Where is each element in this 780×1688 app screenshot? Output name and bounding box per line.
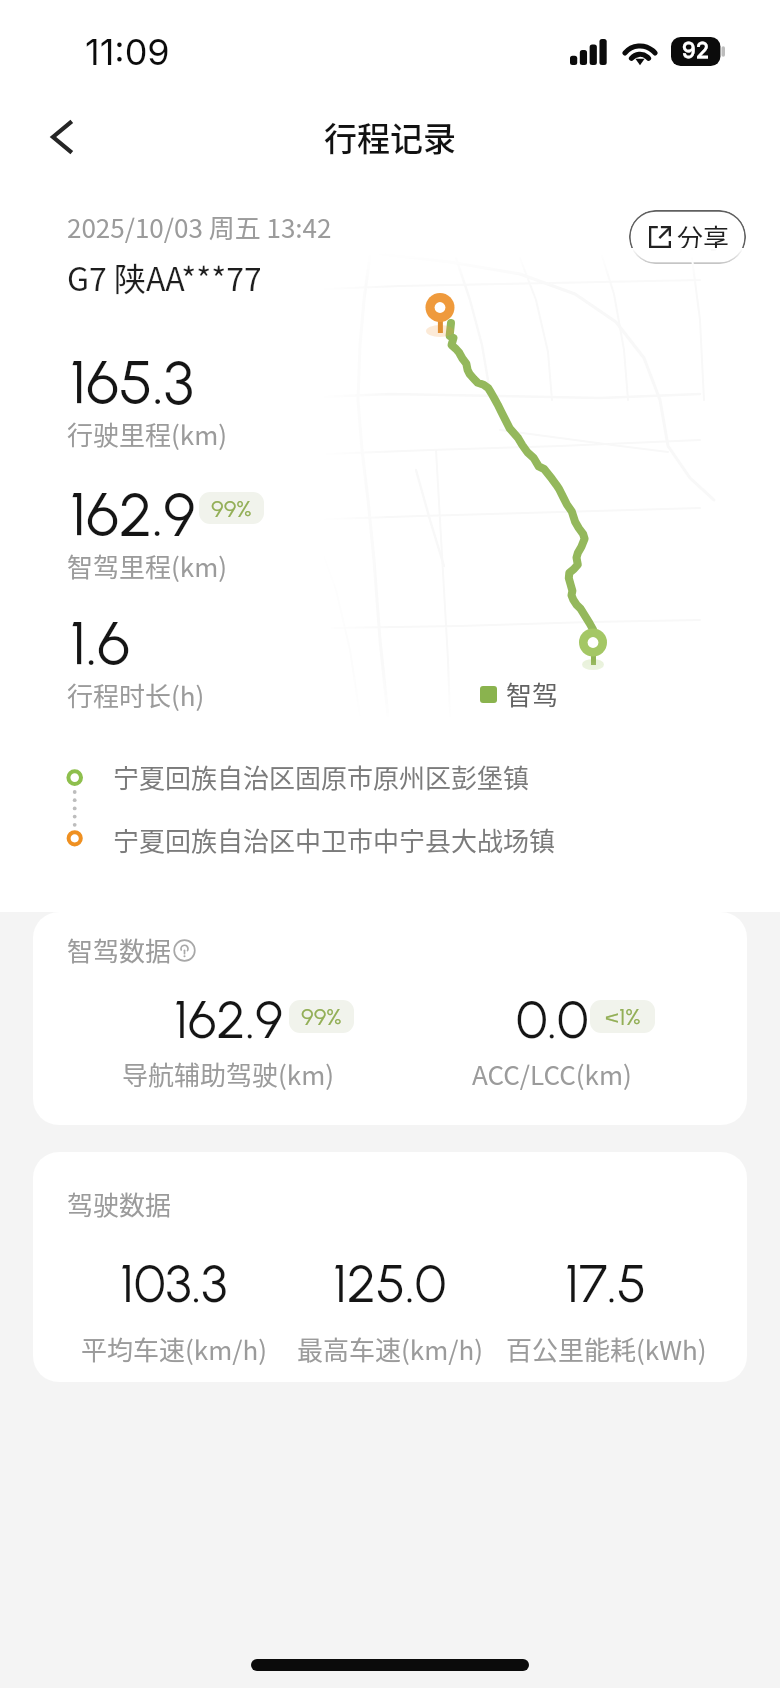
staticText: 百公里能耗(kWh) <box>506 1330 707 1368</box>
button[interactable]: Back <box>24 98 102 176</box>
staticText: 162.9 <box>70 477 196 550</box>
staticText: ACC/LCC(km) <box>472 1055 632 1093</box>
staticText: 99% <box>301 1002 342 1031</box>
staticText: 宁夏回族自治区固原市原州区彭堡镇 <box>113 758 530 796</box>
staticText: 智驾 <box>506 675 559 713</box>
staticText: 宁夏回族自治区中卫市中宁县大战场镇 <box>113 821 556 859</box>
button[interactable]: 智驾数据 <box>33 912 747 1125</box>
staticText: 行程时长(h) <box>67 676 205 714</box>
staticText: 最高车速(km/h) <box>297 1330 483 1368</box>
staticText: 智驾数据 <box>67 931 172 969</box>
staticText: 2025/10/03 周五 13:42 <box>67 208 332 246</box>
staticText: 103.3 <box>120 1252 228 1316</box>
button[interactable]: 分享 <box>629 210 746 264</box>
staticText: 11:09 <box>85 30 170 74</box>
button[interactable]: Trip route start and end <box>50 748 730 868</box>
staticText: 行驶里程(km) <box>67 415 228 453</box>
staticText: 99% <box>211 494 252 523</box>
staticText: 162.9 <box>174 988 283 1052</box>
staticText: 分享 <box>677 218 730 256</box>
staticText: 1.6 <box>70 606 130 679</box>
staticText: 智驾里程(km) <box>67 547 228 585</box>
staticText: <1% <box>605 1002 641 1031</box>
staticText: 平均车速(km/h) <box>81 1330 267 1368</box>
staticText: 92 <box>682 37 710 64</box>
staticText: 125.0 <box>333 1252 447 1316</box>
button[interactable]: Trip map <box>300 255 750 675</box>
staticText: 17.5 <box>565 1252 647 1316</box>
staticText: 0.0 <box>516 988 589 1052</box>
staticText: 导航辅助驾驶(km) <box>122 1055 335 1093</box>
button[interactable]: 驾驶数据 <box>33 1152 747 1382</box>
staticText: 驾驶数据 <box>67 1185 172 1223</box>
staticText: G7 陕AA***77 <box>67 254 262 300</box>
staticText: 行程记录 <box>324 113 456 161</box>
button[interactable]: About smart driving data <box>169 935 200 966</box>
staticText: 165.3 <box>70 345 194 418</box>
